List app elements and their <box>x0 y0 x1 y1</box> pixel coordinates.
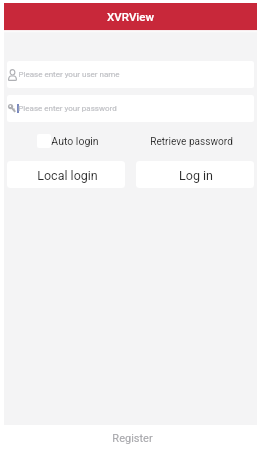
staticText: Log in <box>179 168 213 183</box>
staticText: Local login <box>37 168 98 183</box>
button[interactable]: Local login <box>7 161 125 188</box>
staticText: Retrieve password <box>150 136 233 148</box>
other: User name <box>8 69 17 81</box>
staticText: XVRView <box>107 10 154 23</box>
button[interactable]: Retrieve password <box>150 136 233 148</box>
button[interactable]: Password <box>7 95 254 122</box>
button[interactable]: Register <box>0 429 264 447</box>
button[interactable]: Auto login <box>37 134 99 148</box>
staticText: Auto login <box>51 135 99 147</box>
button[interactable]: User name <box>7 61 254 88</box>
other: Password <box>8 104 16 113</box>
button[interactable]: Log in <box>136 161 254 188</box>
staticText: Please enter your user name <box>18 70 120 79</box>
staticText: Please enter your password <box>18 104 117 113</box>
staticText: Register <box>112 432 153 445</box>
